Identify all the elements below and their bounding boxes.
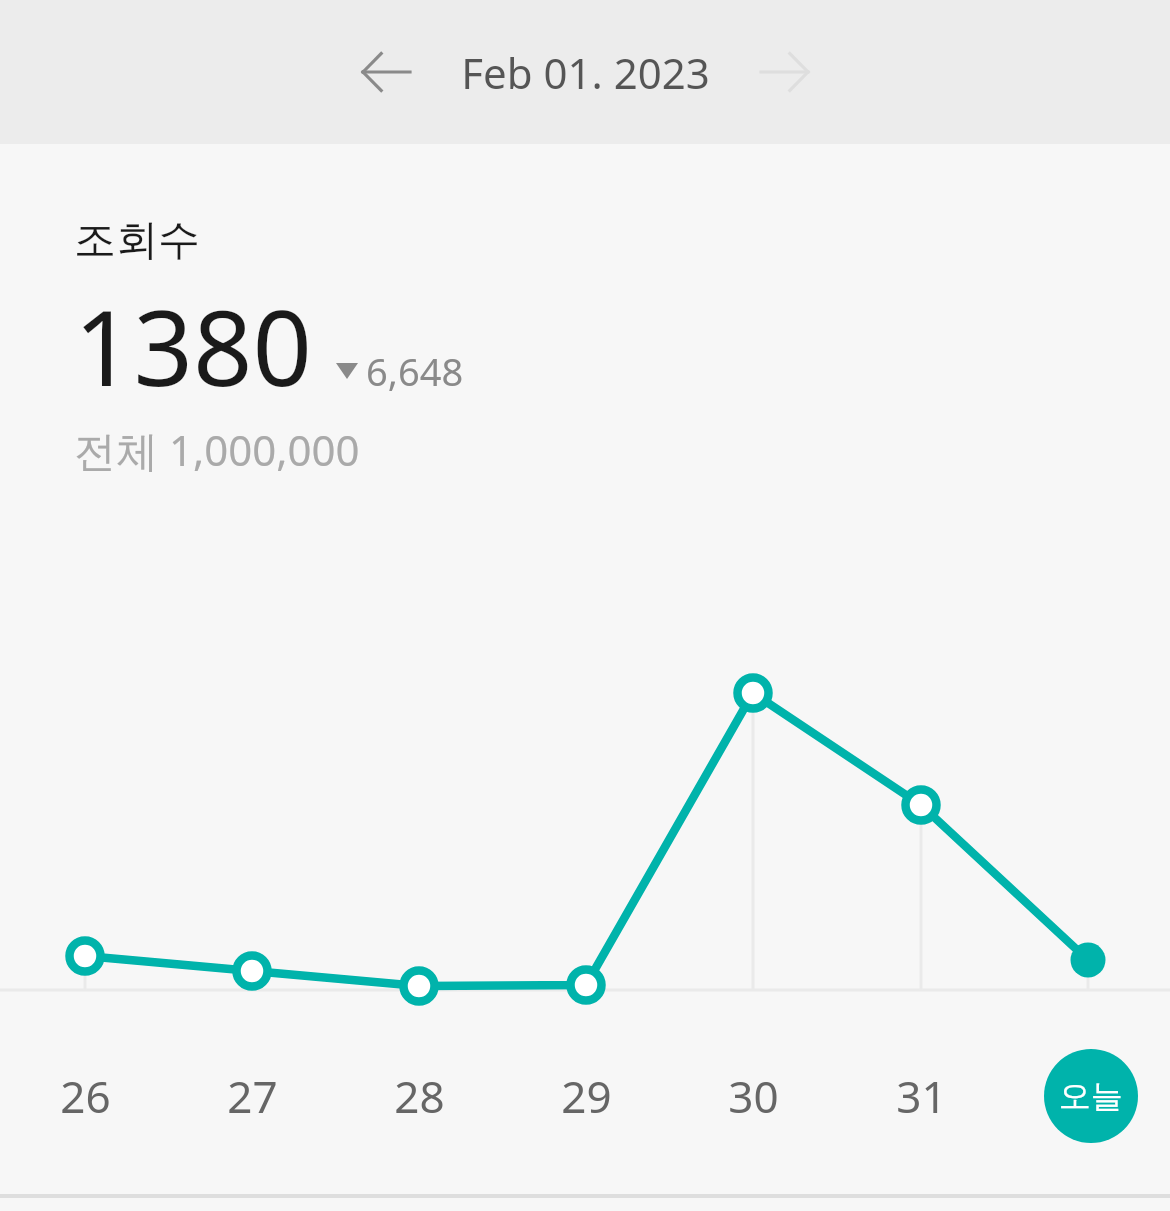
button[interactable]: Previous day [340, 30, 432, 114]
button[interactable]: 31 [871, 1052, 971, 1140]
staticText: 전체 1,000,000 [74, 421, 360, 478]
staticText: 27 [227, 1066, 278, 1126]
staticText: 조회수 [74, 214, 200, 267]
staticText: 6,648 [366, 345, 464, 397]
button[interactable]: 오늘 [1044, 1049, 1138, 1143]
staticText: 28 [394, 1066, 445, 1126]
staticText: 1380 [74, 275, 312, 417]
button[interactable]: 27 [202, 1052, 302, 1140]
button[interactable]: 28 [369, 1052, 469, 1140]
staticText: 29 [561, 1066, 612, 1126]
staticText: Feb 01. 2023 [461, 44, 710, 101]
button[interactable]: 29 [536, 1052, 636, 1140]
staticText: 오늘 [1059, 1076, 1123, 1116]
staticText: 30 [728, 1066, 779, 1126]
button[interactable]: 26 [35, 1052, 135, 1140]
staticText: 26 [60, 1066, 111, 1126]
button[interactable]: 30 [703, 1052, 803, 1140]
staticText: 31 [896, 1066, 947, 1126]
